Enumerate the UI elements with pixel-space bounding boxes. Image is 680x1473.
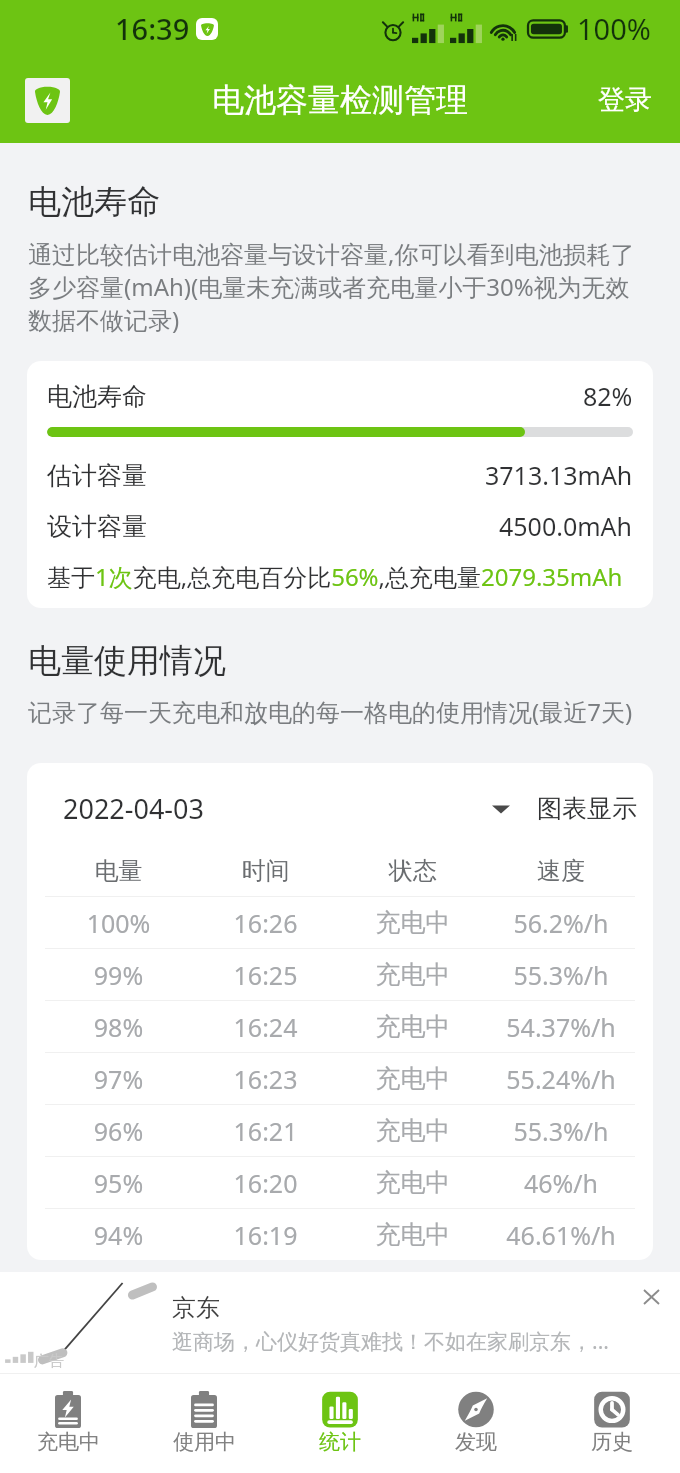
staticText: 2022-04-03: [63, 790, 204, 827]
staticText: 97%: [45, 1062, 192, 1096]
staticText: 16:19: [192, 1218, 339, 1252]
staticText: 时间: [192, 856, 339, 886]
button[interactable]: 图表显示: [492, 786, 637, 817]
button[interactable]: 94%: [45, 1209, 635, 1260]
staticText: 82%: [583, 379, 633, 413]
staticText: 统计: [319, 1429, 361, 1455]
staticText: 登录: [598, 83, 652, 117]
staticText: 电池容量检测管理: [212, 80, 468, 120]
staticText: 速度: [487, 856, 635, 886]
staticText: 逛商场，心仪好货真难找！不如在家刷京东，...: [172, 1327, 609, 1356]
staticText: 电量: [45, 856, 192, 886]
staticText: 99%: [45, 958, 192, 992]
button[interactable]: 98%: [45, 1001, 635, 1052]
staticText: 使用中: [173, 1429, 236, 1455]
staticText: 记录了每一天充电和放电的每一格电的使用情况(最近7天): [28, 695, 633, 728]
button[interactable]: 充电中: [0, 1374, 136, 1473]
staticText: 55.3%/h: [487, 958, 635, 992]
staticText: 估计容量: [47, 460, 147, 491]
staticText: 充电中: [339, 1219, 487, 1250]
button[interactable]: 100%: [45, 897, 635, 948]
staticText: 电池寿命: [47, 381, 147, 412]
button[interactable]: 95%: [45, 1157, 635, 1208]
staticText: 98%: [45, 1010, 192, 1044]
staticText: 94%: [45, 1218, 192, 1252]
button[interactable]: 登录: [574, 65, 680, 135]
staticText: 充电中: [339, 907, 487, 938]
staticText: 100%: [577, 9, 651, 48]
button[interactable]: 统计: [272, 1374, 408, 1473]
staticText: 状态: [339, 856, 487, 886]
staticText: 55.3%/h: [487, 1114, 635, 1148]
staticText: 图表显示: [537, 793, 637, 824]
staticText: 充电中: [339, 1063, 487, 1094]
staticText: 100%: [45, 906, 192, 940]
staticText: 充电中: [339, 1115, 487, 1146]
staticText: 广告: [34, 1352, 64, 1371]
staticText: 京东: [172, 1293, 220, 1323]
staticText: 54.37%/h: [487, 1010, 635, 1044]
staticText: 充电中: [37, 1429, 100, 1455]
staticText: 16:23: [192, 1062, 339, 1096]
button[interactable]: 历史: [544, 1374, 680, 1473]
staticText: 基于1次充电,总充电百分比56%,总充电量2079.35mAh: [47, 560, 623, 593]
staticText: 46.61%/h: [487, 1218, 635, 1252]
staticText: 95%: [45, 1166, 192, 1200]
staticText: 46%/h: [487, 1166, 635, 1200]
staticText: 4500.0mAh: [499, 509, 633, 543]
staticText: 96%: [45, 1114, 192, 1148]
staticText: 发现: [455, 1429, 497, 1455]
staticText: 电池寿命: [28, 181, 160, 223]
staticText: 历史: [591, 1429, 633, 1455]
button[interactable]: Close ad: [626, 1272, 680, 1322]
button[interactable]: App logo: [25, 78, 70, 123]
staticText: 55.24%/h: [487, 1062, 635, 1096]
button[interactable]: 电池寿命: [27, 361, 653, 608]
staticText: 3713.13mAh: [485, 458, 633, 492]
staticText: 通过比较估计电池容量与设计容量,你可以看到电池损耗了多少容量(mAh)(电量未充…: [28, 237, 640, 336]
button[interactable]: 使用中: [136, 1374, 272, 1473]
staticText: 充电中: [339, 1167, 487, 1198]
staticText: 16:21: [192, 1114, 339, 1148]
button[interactable]: 96%: [45, 1105, 635, 1156]
staticText: 56.2%/h: [487, 906, 635, 940]
button[interactable]: 99%: [45, 949, 635, 1000]
staticText: 16:24: [192, 1010, 339, 1044]
staticText: 设计容量: [47, 511, 147, 542]
staticText: 16:20: [192, 1166, 339, 1200]
staticText: 充电中: [339, 1011, 487, 1042]
staticText: 16:26: [192, 906, 339, 940]
staticText: 16:39: [115, 9, 190, 48]
staticText: 16:25: [192, 958, 339, 992]
staticText: 充电中: [339, 959, 487, 990]
button[interactable]: 97%: [45, 1053, 635, 1104]
button[interactable]: 发现: [408, 1374, 544, 1473]
staticText: 电量使用情况: [28, 640, 226, 682]
